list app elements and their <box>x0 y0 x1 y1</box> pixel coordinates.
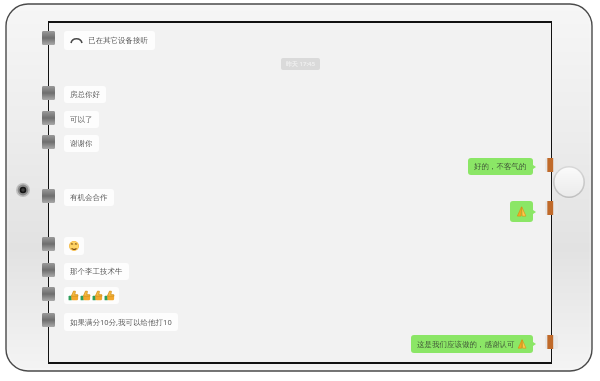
staticText: 如果满分10分,我可以给他打10 <box>70 317 172 327</box>
button[interactable]: Avatar <box>42 237 55 251</box>
button[interactable] <box>64 287 119 304</box>
staticText: 已在其它设备接听 <box>88 36 148 45</box>
button[interactable]: Avatar <box>545 158 558 172</box>
staticText: 这是我们应该做的，感谢认可 <box>417 340 515 349</box>
staticText: 好的，不客气的 <box>474 162 527 171</box>
button[interactable]: 如果满分10分,我可以给他打10 <box>64 313 178 331</box>
staticText: 房总你好 <box>70 90 100 99</box>
button[interactable]: Avatar <box>42 287 55 301</box>
button[interactable] <box>64 237 84 255</box>
staticText: 那个李工技术牛 <box>70 267 123 276</box>
button[interactable]: 可以了 <box>64 111 99 128</box>
button[interactable]: 谢谢你 <box>64 135 99 152</box>
button[interactable]: 房总你好 <box>64 86 106 103</box>
button[interactable] <box>510 201 533 222</box>
button[interactable]: 这是我们应该做的，感谢认可 <box>411 335 533 353</box>
button[interactable]: 那个李工技术牛 <box>64 263 129 280</box>
button[interactable]: Avatar <box>42 111 55 125</box>
staticText: 可以了 <box>70 115 93 124</box>
button[interactable]: Avatar <box>42 189 55 203</box>
button[interactable]: 有机会合作 <box>64 189 114 206</box>
button[interactable]: Avatar <box>42 86 55 100</box>
button[interactable]: 已在其它设备接听 <box>64 31 155 50</box>
button[interactable]: Avatar <box>545 201 558 215</box>
button[interactable]: Avatar <box>42 31 55 45</box>
button[interactable]: Home <box>553 166 585 198</box>
button[interactable]: Avatar <box>545 335 558 349</box>
button[interactable]: 好的，不客气的 <box>468 158 533 175</box>
staticText: 昨天 17:45 <box>286 60 315 68</box>
button[interactable]: Avatar <box>42 263 55 277</box>
staticText: 有机会合作 <box>70 193 108 202</box>
staticText: 谢谢你 <box>70 139 93 148</box>
button[interactable]: Avatar <box>42 313 55 327</box>
button[interactable]: Avatar <box>42 135 55 149</box>
